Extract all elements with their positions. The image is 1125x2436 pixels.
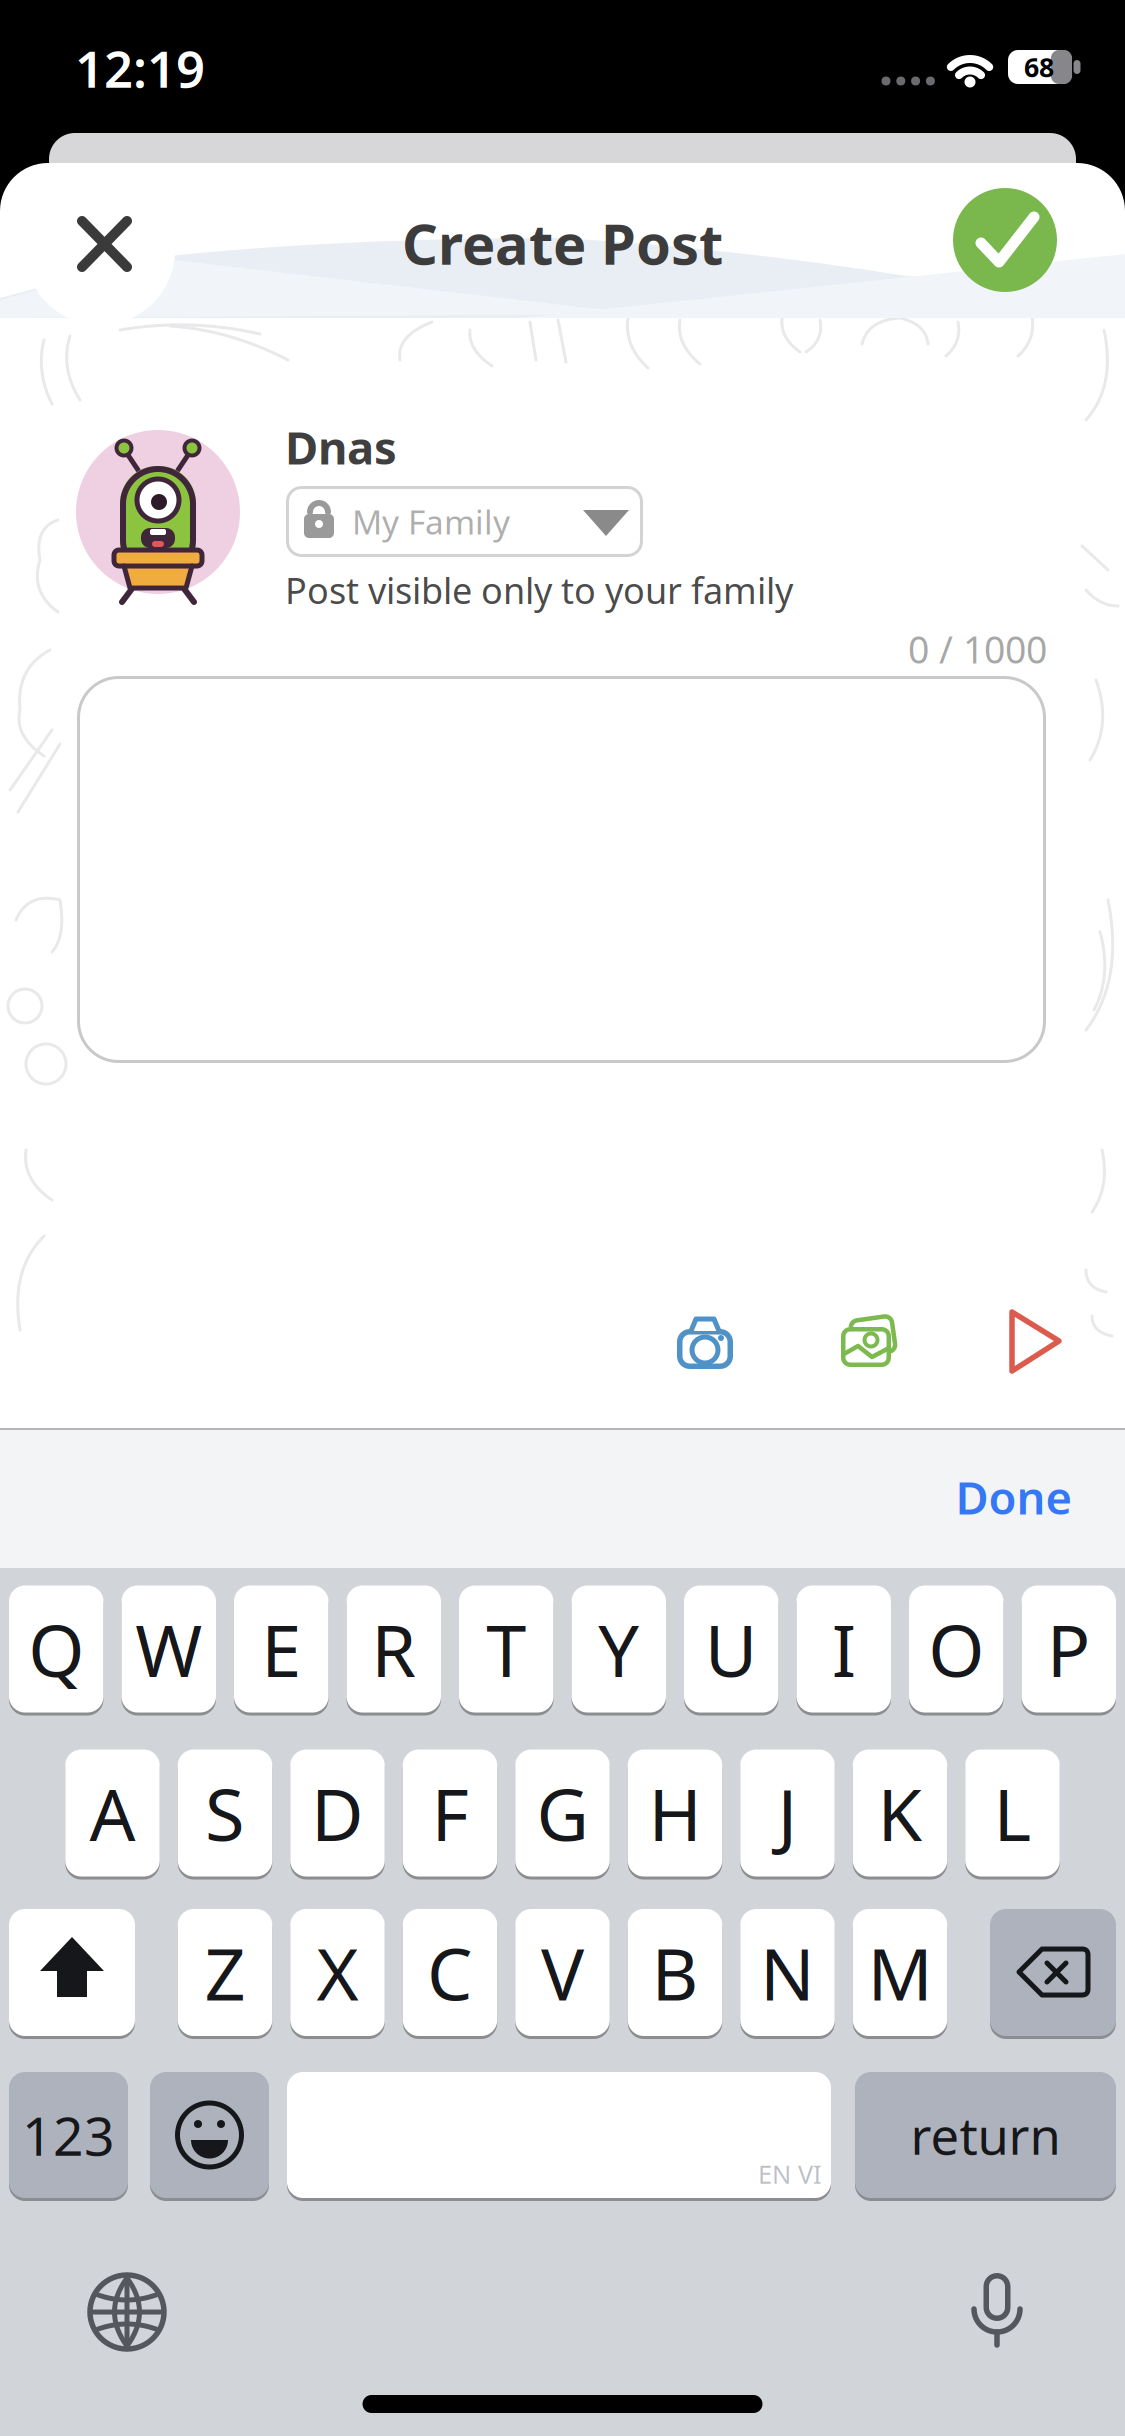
button[interactable]: P (1021, 1585, 1116, 1715)
button[interactable]: B (628, 1909, 722, 2039)
staticText: Dnas (285, 417, 397, 477)
button[interactable]: Choose photo (816, 1292, 916, 1392)
staticText: H (648, 1765, 701, 1861)
button[interactable]: O (909, 1585, 1003, 1715)
staticText: L (993, 1765, 1031, 1861)
staticText: Q (28, 1601, 84, 1697)
staticText: D (311, 1765, 364, 1861)
button[interactable]: I (796, 1585, 891, 1715)
staticText: F (431, 1765, 468, 1861)
staticText: T (486, 1601, 526, 1697)
button[interactable]: C (403, 1909, 497, 2039)
staticText: Z (204, 1925, 245, 2020)
staticText: O (928, 1601, 984, 1697)
staticText: 123 (22, 2100, 115, 2170)
staticText: P (1047, 1601, 1091, 1697)
staticText: E (261, 1601, 301, 1697)
button[interactable]: W (121, 1585, 216, 1715)
staticText: N (760, 1925, 815, 2020)
staticText: K (877, 1765, 922, 1861)
button[interactable]: E (234, 1585, 328, 1715)
staticText: Create Post (402, 206, 723, 280)
staticText: Done (955, 1467, 1072, 1527)
button[interactable]: L (965, 1749, 1060, 1879)
button[interactable]: R (346, 1585, 441, 1715)
button[interactable]: Shift (9, 1909, 135, 2039)
staticText: 68 (1024, 49, 1054, 85)
button[interactable]: Dictate (960, 2271, 1034, 2349)
button[interactable]: V (515, 1909, 610, 2039)
button[interactable]: Record video (982, 1292, 1082, 1392)
button[interactable]: S (178, 1749, 272, 1879)
staticText: X (316, 1925, 358, 2020)
staticText: My Family (352, 499, 510, 544)
button[interactable]: D (290, 1749, 385, 1879)
staticText: B (651, 1925, 698, 2020)
button[interactable]: Y (571, 1585, 666, 1715)
staticText: J (777, 1765, 797, 1861)
button[interactable]: N (740, 1909, 835, 2039)
button[interactable]: Return (855, 2072, 1116, 2201)
staticText: U (705, 1601, 758, 1697)
staticText: 12:19 (75, 34, 205, 102)
button[interactable]: F (403, 1749, 497, 1879)
button[interactable]: A (65, 1749, 160, 1879)
staticText: S (205, 1765, 245, 1861)
button[interactable]: T (459, 1585, 553, 1715)
button[interactable]: Space (287, 2072, 831, 2201)
button[interactable]: G (515, 1749, 610, 1879)
button[interactable]: Z (178, 1909, 272, 2039)
button[interactable]: Take photo (655, 1291, 755, 1391)
staticText: G (536, 1765, 588, 1861)
button[interactable]: X (290, 1909, 385, 2039)
staticText: M (867, 1925, 932, 2020)
button[interactable]: J (740, 1749, 835, 1879)
staticText: A (89, 1765, 135, 1861)
staticText: I (832, 1601, 856, 1697)
button[interactable]: Close (0, 0, 1125, 2436)
staticText: Post visible only to your family (285, 566, 793, 614)
staticText: W (135, 1601, 202, 1697)
button[interactable]: Q (9, 1585, 103, 1715)
button[interactable]: K (853, 1749, 947, 1879)
staticText: Y (598, 1601, 639, 1697)
staticText: 0 / 1000 (908, 624, 1047, 674)
staticText: EN VI (758, 2157, 822, 2191)
button[interactable]: Done (955, 1467, 1072, 1527)
staticText: C (427, 1925, 473, 2020)
button[interactable]: My Family (286, 486, 643, 557)
staticText: return (910, 2101, 1060, 2169)
button[interactable]: M (853, 1909, 947, 2039)
button[interactable]: Emoji (150, 2072, 269, 2201)
button[interactable]: H (628, 1749, 722, 1879)
staticText: V (541, 1925, 584, 2020)
button[interactable]: Delete (990, 1909, 1116, 2039)
button[interactable]: Post (953, 188, 1057, 292)
staticText: R (371, 1601, 416, 1697)
button[interactable]: U (684, 1585, 778, 1715)
button[interactable]: Next keyboard (90, 2275, 164, 2349)
button[interactable]: 123 (9, 2072, 128, 2201)
